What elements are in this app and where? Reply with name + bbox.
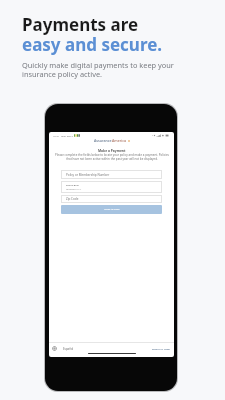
staticText: Assurance xyxy=(94,138,112,143)
staticText: MM/DD/YYYY xyxy=(66,187,82,190)
staticText: Español xyxy=(63,347,74,351)
staticText: easy and secure. xyxy=(22,33,163,56)
button[interactable]: Zip Code xyxy=(66,195,157,203)
button[interactable]: Change language xyxy=(52,346,57,351)
staticText: Quickly make digital payments to keep yo… xyxy=(22,60,174,79)
button[interactable]: Locate My Policy xyxy=(61,205,162,214)
staticText: Make a Payment xyxy=(98,148,126,152)
staticText: Payments are xyxy=(22,13,139,36)
staticText: Policy or Membership Number xyxy=(66,173,110,177)
staticText: Zip Code xyxy=(66,197,79,201)
staticText: that have not been active within the pas… xyxy=(66,157,158,161)
button[interactable]: Date of Birth xyxy=(66,181,157,193)
staticText: America xyxy=(112,138,127,143)
staticText: 10:31 xyxy=(53,134,60,137)
staticText: Mon Dec 2 xyxy=(61,134,73,137)
staticText: Return to Login xyxy=(152,347,171,350)
button[interactable]: Policy or Membership Number xyxy=(66,170,157,179)
staticText: Please complete the fields below to loca… xyxy=(55,153,169,157)
staticText: Locate My Policy xyxy=(104,208,120,211)
staticText: Date of Birth xyxy=(66,184,79,187)
